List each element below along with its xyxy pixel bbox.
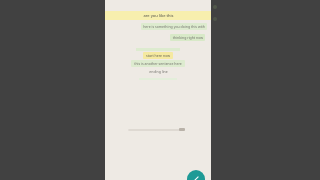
staticText: start here now: [146, 53, 170, 58]
staticText: thinking right now: [172, 35, 203, 40]
button[interactable]: thinking right now: [172, 35, 203, 40]
button[interactable]: here is something you doing this with: [143, 24, 205, 29]
button[interactable]: this is another sentence here: [134, 61, 182, 66]
staticText: here is something you doing this with: [143, 24, 205, 29]
button[interactable]: are you like this: [105, 11, 211, 20]
button[interactable]: start here now: [146, 53, 170, 58]
staticText: are you like this: [143, 13, 174, 18]
button[interactable]: Compose: [187, 170, 205, 180]
staticText: ending line: [149, 69, 168, 74]
staticText: this is another sentence here: [134, 61, 182, 66]
